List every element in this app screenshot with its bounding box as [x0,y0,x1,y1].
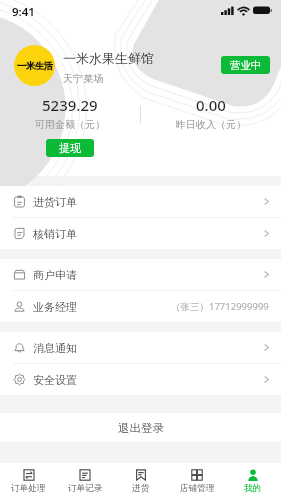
staticText: 进货 [132,483,150,494]
staticText: 订单记录 [68,483,103,494]
staticText: 9:41 [12,4,35,20]
button[interactable]: 商户申请 [0,259,281,290]
staticText: 订单处理 [11,483,46,494]
staticText: （张三）17712999999 [171,300,269,313]
staticText: 5239.29 [42,95,98,115]
staticText: 我的 [244,483,262,494]
button[interactable]: 营业中 [221,56,270,74]
button[interactable]: 进货 [113,469,169,494]
button[interactable]: 进货订单 [0,186,281,217]
staticText: 可用金额（元） [35,118,105,131]
staticText: 天宁菜场 [63,72,103,85]
button[interactable]: 订单记录 [57,469,113,494]
staticText: 店铺管理 [180,483,215,494]
button[interactable]: 消息通知 [0,332,281,363]
staticText: 安全设置 [33,373,77,387]
staticText: 一米水果生鲜馆 [63,50,154,66]
staticText: 一米生活 [17,60,53,71]
staticText: 退出登录 [118,421,164,435]
button[interactable]: 我的 [225,469,281,494]
staticText: 核销订单 [33,227,77,241]
button[interactable]: 订单处理 [0,469,57,494]
button[interactable]: 提现 [46,139,94,157]
button[interactable]: 业务经理 [0,291,281,322]
button[interactable]: 店铺管理 [169,469,225,494]
staticText: 营业中 [230,59,262,72]
button[interactable]: 退出登录 [0,413,281,442]
staticText: 进货订单 [33,195,77,209]
staticText: 昨日收入（元） [176,118,246,131]
staticText: 提现 [59,141,81,155]
button[interactable]: 安全设置 [0,364,281,395]
staticText: 业务经理 [33,300,77,314]
button[interactable]: 核销订单 [0,218,281,249]
staticText: 商户申请 [33,268,77,282]
staticText: 消息通知 [33,341,77,355]
staticText: 0.00 [196,95,226,115]
